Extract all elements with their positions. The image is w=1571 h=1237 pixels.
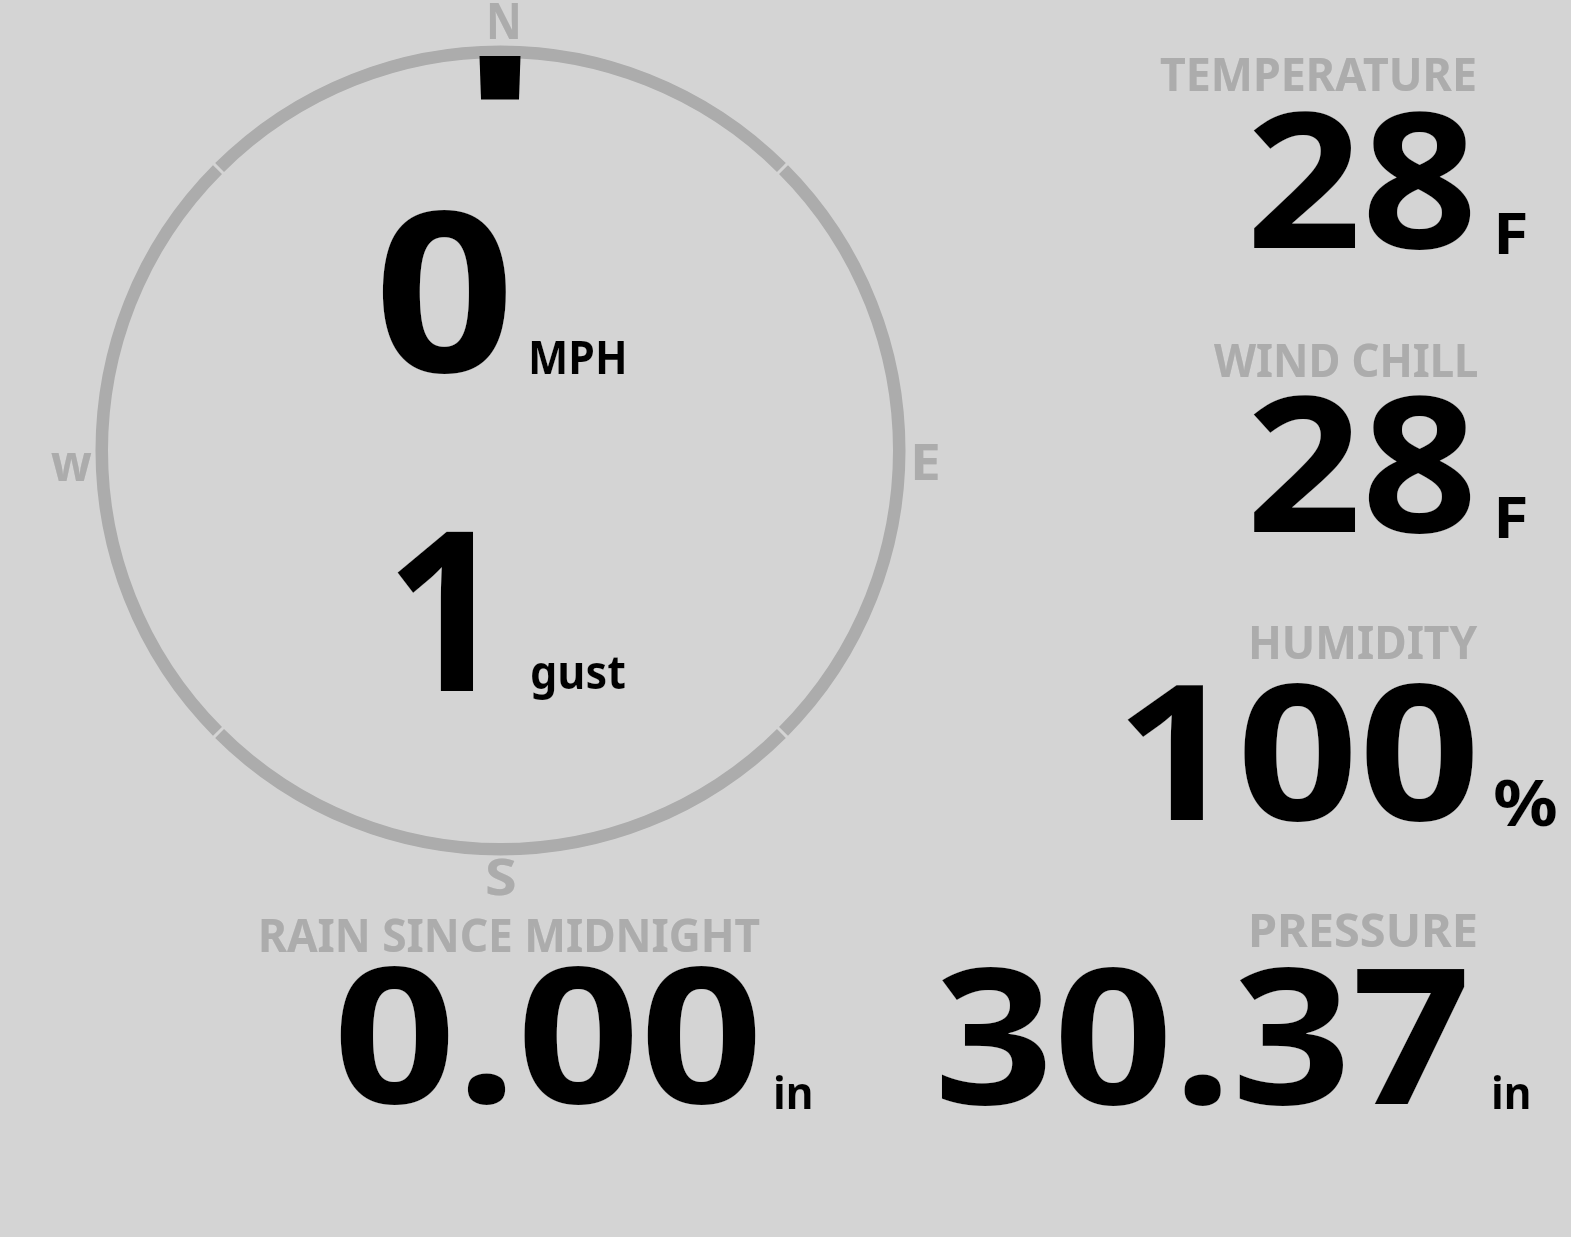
staticText: 0.00 <box>333 901 764 1158</box>
staticText: w <box>51 428 92 496</box>
staticText: N <box>486 0 522 54</box>
staticText: in <box>773 1061 814 1122</box>
button[interactable]: Pressure <box>910 900 1550 1120</box>
button[interactable]: Wind chill <box>1150 325 1550 555</box>
staticText: 0 <box>374 135 515 437</box>
staticText: F <box>1493 192 1529 271</box>
button[interactable]: Wind gust <box>380 515 650 710</box>
staticText: TEMPERATURE <box>1160 42 1478 105</box>
staticText: S <box>485 842 517 910</box>
staticText: HUMIDITY <box>1248 610 1478 673</box>
staticText: 30.37 <box>934 902 1471 1159</box>
staticText: F <box>1493 476 1529 555</box>
staticText: % <box>1493 758 1558 845</box>
staticText: MPH <box>528 325 628 388</box>
button[interactable]: Rain since midnight <box>240 900 830 1120</box>
staticText: E <box>910 427 941 495</box>
button[interactable]: Humidity <box>1080 610 1550 840</box>
staticText: 28 <box>1246 46 1478 303</box>
staticText: PRESSURE <box>1248 898 1478 961</box>
staticText: 1 <box>385 454 507 756</box>
button[interactable]: Wind speed <box>360 190 650 390</box>
staticText: WIND CHILL <box>1214 328 1479 391</box>
staticText: gust <box>530 640 627 703</box>
button[interactable]: Temperature <box>1150 40 1550 270</box>
staticText: RAIN SINCE MIDNIGHT <box>258 903 761 966</box>
staticText: 100 <box>1115 618 1481 875</box>
staticText: in <box>1491 1061 1532 1122</box>
staticText: 28 <box>1246 330 1478 587</box>
